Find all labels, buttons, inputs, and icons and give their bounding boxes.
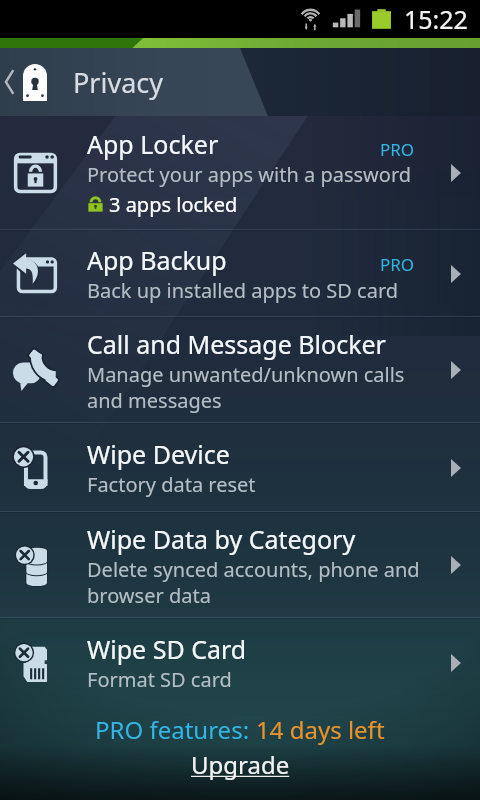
staticText: Factory data reset — [87, 471, 256, 498]
button[interactable]: Wipe Device — [0, 424, 480, 511]
staticText: App Backup — [87, 243, 227, 277]
staticText: PRO — [380, 138, 415, 161]
button[interactable]: Wipe Data by Category — [0, 513, 480, 617]
staticText: Wipe SD Card — [87, 632, 247, 666]
staticText: PRO — [380, 253, 415, 276]
button[interactable]: Call and Message Blocker — [0, 318, 480, 422]
staticText: App Locker — [87, 127, 219, 161]
staticText: Wipe Device — [87, 437, 230, 471]
staticText: PRO features: — [95, 713, 256, 746]
button[interactable]: Back — [0, 48, 480, 116]
button[interactable]: Wipe SD Card — [0, 619, 480, 706]
staticText: Wipe Data by Category — [87, 522, 356, 556]
staticText: Format SD card — [87, 666, 232, 693]
staticText: 15:22 — [404, 2, 468, 36]
staticText: Upgrade — [191, 748, 290, 781]
staticText: Privacy — [73, 64, 164, 101]
staticText: 3 apps locked — [109, 191, 238, 218]
staticText: Delete synced accounts, phone and browse… — [87, 556, 420, 609]
staticText: Manage unwanted/unknown calls and messag… — [87, 361, 405, 414]
staticText: 14 days left — [256, 713, 385, 746]
staticText: Protect your apps with a password — [87, 161, 412, 188]
button[interactable]: App Backup — [0, 231, 480, 316]
staticText: Back up installed apps to SD card — [87, 277, 399, 304]
button[interactable]: Upgrade — [191, 748, 290, 781]
button[interactable]: App Locker — [0, 116, 480, 229]
staticText: Call and Message Blocker — [87, 327, 386, 361]
